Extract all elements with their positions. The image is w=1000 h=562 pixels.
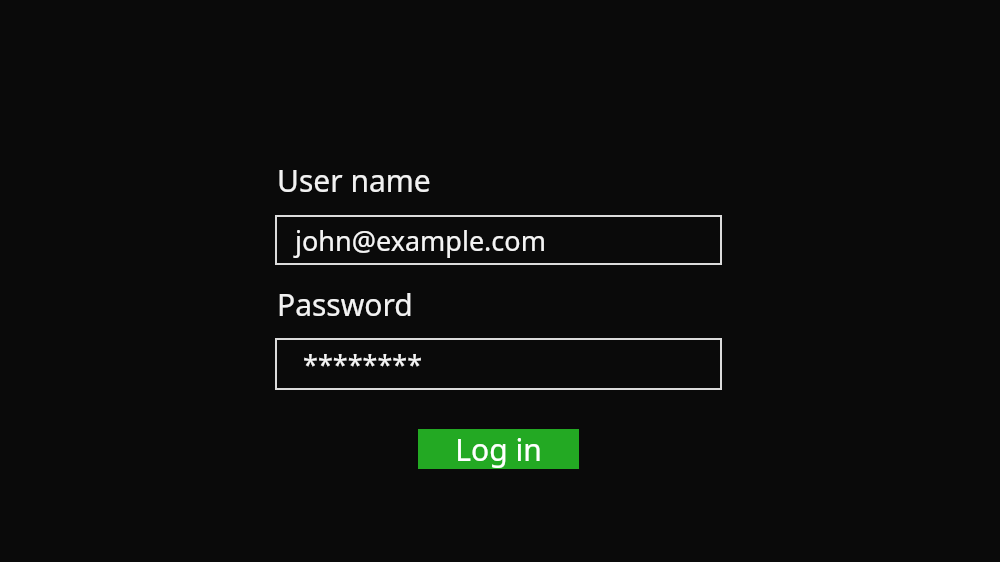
staticText: ******** (303, 346, 423, 383)
staticText: Log in (455, 429, 542, 469)
button[interactable]: Log in (418, 429, 579, 469)
button[interactable]: Password input (275, 338, 722, 390)
button[interactable]: User name input (275, 215, 722, 265)
staticText: User name (277, 160, 431, 201)
staticText: john@example.com (295, 222, 546, 259)
staticText: Password (277, 284, 413, 325)
